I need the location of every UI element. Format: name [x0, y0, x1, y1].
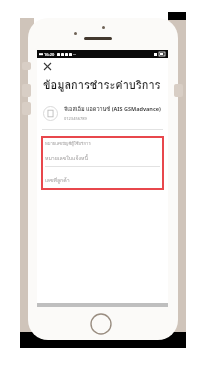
staticText: ข้อมูลการชำระค่าบริการ — [43, 76, 161, 93]
button[interactable]: Close — [42, 61, 53, 72]
staticText: 16:20 — [44, 52, 55, 57]
button[interactable]: จีเอสเอ็ม แอดวานซ์ (AIS GSMadvance) — [43, 105, 162, 121]
staticText: ··· — [73, 52, 77, 57]
staticText: หมายเลขบัญชีผู้ใช้บริการ — [45, 140, 91, 147]
button[interactable]: Home — [90, 313, 112, 335]
staticText: เลขที่ลูกค้า — [45, 176, 70, 184]
staticText: 0123456789 — [64, 116, 87, 121]
staticText: หมายเลขใบแจ้งหนี้ — [45, 154, 88, 162]
button[interactable]: เลขที่ลูกค้า — [45, 176, 160, 189]
button[interactable]: หมายเลขใบแจ้งหนี้ — [45, 154, 160, 167]
staticText: จีเอสเอ็ม แอดวานซ์ (AIS GSMadvance) — [64, 105, 161, 114]
